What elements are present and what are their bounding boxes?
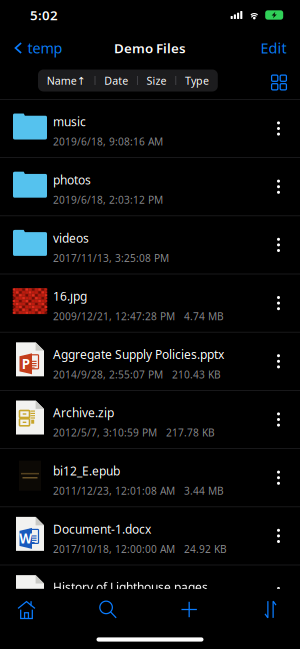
staticText: W	[19, 529, 32, 547]
button[interactable]: Home	[0, 589, 53, 630]
staticText: 2011/12/23, 12:01:08 AM 3.44 MB	[53, 484, 224, 498]
staticText: Demo Files	[114, 39, 186, 57]
staticText: 2017/10/18, 12:00:00 AM 24.92 KB	[53, 542, 227, 556]
staticText: Edit	[260, 38, 286, 58]
button[interactable]: Type	[176, 69, 218, 91]
staticText: Size	[147, 73, 167, 88]
staticText: History of Lighthouse.pages	[53, 579, 208, 595]
staticText: bi12_E.epub	[53, 463, 120, 479]
button[interactable]: Archive.zip	[0, 391, 300, 449]
staticText: 2017/11/13, 3:25:08 PM	[53, 251, 169, 265]
button[interactable]: Search	[81, 589, 134, 630]
staticText: P	[22, 355, 30, 373]
button[interactable]: Add	[163, 589, 216, 630]
button[interactable]: Date	[95, 69, 137, 91]
staticText: videos	[53, 230, 89, 246]
staticText: Aggregate Supply Policies.pptx	[53, 346, 224, 362]
staticText: 2019/6/18, 2:03:12 PM	[53, 193, 163, 207]
staticText: Date	[104, 73, 128, 88]
button[interactable]: music	[0, 100, 300, 158]
button[interactable]: temp	[0, 33, 71, 63]
button[interactable]: Name↑	[38, 69, 95, 91]
button[interactable]: History of Lighthouse.pages	[0, 565, 300, 624]
staticText: 5:02	[30, 6, 58, 24]
button[interactable]: P	[0, 333, 300, 391]
staticText: Name↑	[47, 73, 86, 88]
button[interactable]: Grid view	[262, 69, 296, 95]
staticText: Type	[185, 73, 209, 88]
staticText: 2019/6/18, 9:08:16 AM	[53, 135, 163, 149]
button[interactable]: W	[0, 507, 300, 565]
staticText: Document-1.docx	[53, 521, 151, 537]
staticText: Archive.zip	[53, 404, 114, 421]
button[interactable]: 16.jpg	[0, 274, 300, 333]
button[interactable]: videos	[0, 216, 300, 274]
button[interactable]: photos	[0, 158, 300, 216]
button[interactable]: bi12_E.epub	[0, 449, 300, 507]
button[interactable]: Size	[138, 69, 175, 91]
button[interactable]: Transfers	[244, 589, 297, 630]
button[interactable]: Edit	[250, 33, 300, 63]
staticText: music	[53, 113, 86, 130]
staticText: 2014/9/28, 2:55:07 PM 210.43 KB	[53, 368, 221, 381]
staticText: 2012/5/7, 3:10:59 PM 217.78 KB	[53, 426, 215, 440]
staticText: 2009/12/21, 12:47:28 PM 4.74 MB	[53, 309, 224, 323]
staticText: 2016/3/4, 10:21:00 AM 1.2 MB	[53, 600, 206, 614]
staticText: 16.jpg	[53, 288, 87, 304]
staticText: photos	[53, 172, 91, 188]
staticText: temp	[28, 38, 63, 58]
